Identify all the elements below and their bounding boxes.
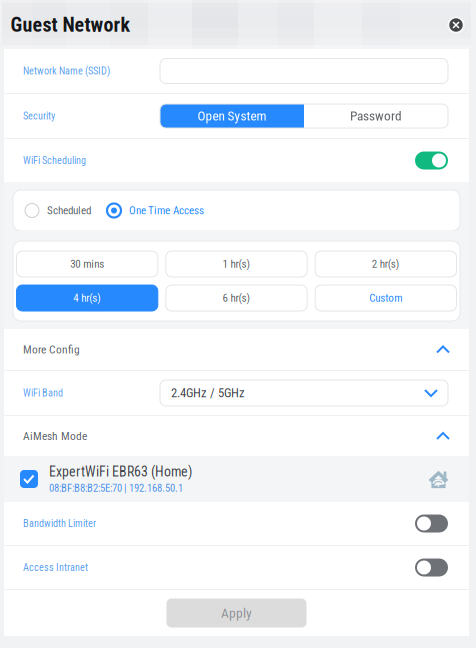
staticText: WiFi Band [23,387,63,399]
button[interactable]: AiMesh Mode [4,416,469,456]
button[interactable]: WiFi Scheduling [415,151,448,169]
staticText: Scheduled [47,204,91,217]
button[interactable]: More Config [4,329,469,370]
button[interactable]: Network Name field [160,58,448,83]
button[interactable]: Custom [315,285,456,311]
staticText: 2.4GHz / 5GHz [171,386,245,400]
staticText: Guest Network [10,13,130,37]
button[interactable]: Access Intranet [415,558,448,576]
button[interactable]: 1 hr(s) [166,251,307,277]
button[interactable]: ExpertWiFi EBR63 (Home) [4,456,469,502]
staticText: Apply [221,605,252,621]
button[interactable]: 4 hr(s) [16,285,158,311]
staticText: Password [350,108,402,124]
staticText: 4 hr(s) [73,291,101,304]
button[interactable]: 6 hr(s) [166,285,307,311]
staticText: Custom [369,291,402,304]
staticText: WiFi Scheduling [23,155,86,166]
button[interactable]: 2 hr(s) [315,251,456,277]
staticText: 30 mins [70,257,104,270]
button[interactable]: 30 mins [16,251,158,277]
button[interactable]: Open System [160,104,304,128]
button[interactable]: WiFi Band [160,380,448,406]
staticText: Security [23,110,55,122]
button[interactable]: Bandwidth Limiter [415,514,448,532]
button[interactable]: One Time Access [103,190,216,231]
staticText: More Config [23,343,80,356]
staticText: 1 hr(s) [222,257,250,270]
staticText: ExpertWiFi EBR63 (Home) [49,464,192,480]
staticText: 08:BF:B8:B2:5E:70 | 192.168.50.1 [49,482,183,494]
staticText: Open System [197,108,266,124]
staticText: 2 hr(s) [372,257,400,270]
button[interactable]: Apply [166,598,306,627]
button[interactable]: Close [444,13,468,37]
staticText: One Time Access [129,204,204,217]
button[interactable]: Password [304,104,448,128]
staticText: Bandwidth Limiter [23,518,96,529]
staticText: 6 hr(s) [222,291,250,304]
staticText: Network Name (SSID) [23,65,110,77]
staticText: Access Intranet [23,562,88,573]
button[interactable]: Scheduled [21,190,103,231]
staticText: AiMesh Mode [23,429,87,443]
